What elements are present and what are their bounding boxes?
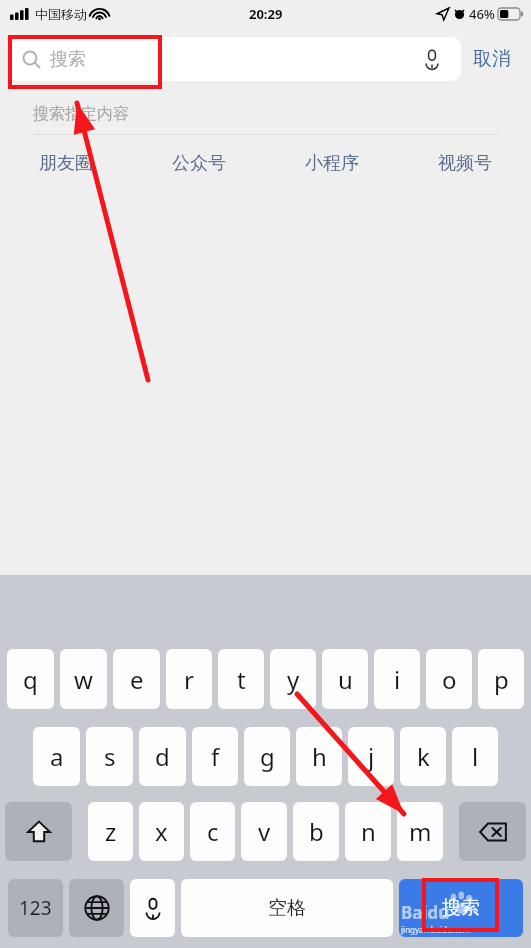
button[interactable]: w xyxy=(60,649,107,709)
staticText: e xyxy=(130,663,144,696)
button[interactable]: 空格 xyxy=(181,879,393,937)
button[interactable]: e xyxy=(113,649,160,709)
staticText: 搜索 xyxy=(442,896,480,920)
staticText: 123 xyxy=(19,895,52,921)
button[interactable]: 搜索 xyxy=(399,879,523,937)
button[interactable]: q xyxy=(7,649,54,709)
staticText: w xyxy=(74,663,93,696)
button[interactable]: Voice search xyxy=(417,44,447,74)
button[interactable]: r xyxy=(166,649,212,709)
button[interactable]: z xyxy=(88,802,133,861)
button[interactable]: m xyxy=(397,802,443,861)
button[interactable]: c xyxy=(190,802,235,861)
button[interactable]: o xyxy=(426,649,472,709)
staticText: b xyxy=(309,815,324,848)
button[interactable]: j xyxy=(348,727,394,786)
staticText: p xyxy=(494,663,509,696)
staticText: 朋友圈 xyxy=(39,152,93,175)
staticText: 46% xyxy=(469,5,495,23)
staticText: u xyxy=(338,663,353,696)
staticText: c xyxy=(207,815,219,848)
staticText: v xyxy=(258,815,271,848)
button[interactable]: 搜索 xyxy=(8,37,461,81)
staticText: a xyxy=(50,740,64,773)
button[interactable]: b xyxy=(293,802,339,861)
staticText: 视频号 xyxy=(438,152,492,175)
button[interactable]: v xyxy=(241,802,287,861)
button[interactable]: h xyxy=(296,727,342,786)
staticText: 小程序 xyxy=(305,152,359,175)
staticText: i xyxy=(394,663,401,696)
button[interactable]: 小程序 xyxy=(265,135,398,191)
staticText: 中国移动 xyxy=(35,6,87,22)
staticText: q xyxy=(23,663,38,696)
staticText: l xyxy=(472,740,479,773)
button[interactable]: x xyxy=(139,802,184,861)
button[interactable]: d xyxy=(139,727,186,786)
staticText: r xyxy=(184,663,194,696)
staticText: 搜索 xyxy=(50,48,86,71)
button[interactable]: n xyxy=(345,802,391,861)
button[interactable]: Switch keyboard xyxy=(69,879,124,937)
button[interactable]: i xyxy=(374,649,420,709)
staticText: o xyxy=(442,663,457,696)
staticText: t xyxy=(237,663,246,696)
staticText: 公众号 xyxy=(172,152,226,175)
staticText: z xyxy=(105,815,117,848)
staticText: 20:29 xyxy=(249,5,283,23)
staticText: d xyxy=(155,740,170,773)
button[interactable]: y xyxy=(270,649,316,709)
button[interactable]: l xyxy=(452,727,498,786)
staticText: y xyxy=(287,663,300,696)
staticText: Baidu xyxy=(401,901,450,924)
staticText: g xyxy=(260,740,275,773)
button[interactable]: 公众号 xyxy=(132,135,265,191)
button[interactable]: 123 xyxy=(8,879,63,937)
button[interactable]: Backspace xyxy=(459,802,526,861)
staticText: j xyxy=(368,740,375,773)
staticText: s xyxy=(104,740,116,773)
staticText: n xyxy=(361,815,376,848)
button[interactable]: u xyxy=(322,649,368,709)
button[interactable]: a xyxy=(33,727,80,786)
staticText: f xyxy=(211,740,220,773)
button[interactable]: 朋友圈 xyxy=(0,135,132,191)
staticText: m xyxy=(409,815,432,848)
staticText: 空格 xyxy=(268,896,306,920)
staticText: jingyan.baidu.com xyxy=(401,924,471,935)
button[interactable]: Shift xyxy=(5,802,72,861)
button[interactable]: 视频号 xyxy=(398,135,531,191)
button[interactable]: f xyxy=(192,727,238,786)
staticText: h xyxy=(312,740,327,773)
button[interactable]: s xyxy=(86,727,133,786)
button[interactable]: k xyxy=(400,727,446,786)
staticText: x xyxy=(155,815,168,848)
staticText: k xyxy=(417,740,430,773)
button[interactable]: p xyxy=(478,649,524,709)
staticText: 搜索指定内容 xyxy=(33,104,129,124)
button[interactable]: g xyxy=(244,727,290,786)
button[interactable]: Dictation xyxy=(130,879,175,937)
staticText: 取消 xyxy=(473,47,511,71)
button[interactable]: t xyxy=(218,649,264,709)
button[interactable]: 取消 xyxy=(461,37,523,81)
